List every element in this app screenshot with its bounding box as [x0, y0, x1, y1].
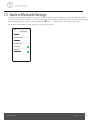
- button[interactable]: [13, 50, 30, 53]
- staticText: motorola: [15, 4, 28, 8]
- button[interactable]: motorola logo: [7, 2, 13, 8]
- staticText: • Open the Settings app on your phone an…: [6, 16, 87, 19]
- staticText: 1.0 Guide to Bluetooth/Settings: [4, 13, 46, 17]
- button[interactable]: [13, 42, 30, 45]
- staticText: Page 4 of 22: [74, 114, 87, 117]
- staticText: on Bluetooth to turn it on. Download the…: [8, 20, 80, 23]
- button[interactable]: [13, 48, 30, 50]
- button[interactable]: [13, 45, 30, 48]
- staticText: on the three dot menu. Then choose Conne…: [8, 18, 88, 21]
- button[interactable]: motorola: [4, 113, 85, 120]
- staticText: motorola: [6, 114, 16, 117]
- button[interactable]: [13, 33, 30, 36]
- button[interactable]: [13, 39, 30, 42]
- staticText: to finish the setup. See section 2.3 for…: [8, 23, 55, 26]
- button[interactable]: [13, 36, 30, 39]
